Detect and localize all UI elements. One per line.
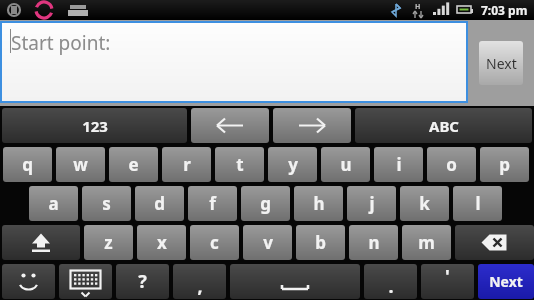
staticText: u [340,153,352,176]
button[interactable]: b [296,225,345,260]
staticText: ? [138,269,147,294]
staticText: p [499,153,510,176]
button[interactable]: , [173,264,226,299]
staticText: f [209,192,216,215]
staticText: q [22,153,33,176]
button[interactable]: q [3,147,52,182]
staticText: a [48,192,59,215]
staticText: e [128,153,139,176]
button[interactable]: r [162,147,211,182]
button[interactable]: 123 [2,108,187,143]
button[interactable]: o [427,147,476,182]
button[interactable]: t [215,147,264,182]
staticText: z [104,231,113,254]
staticText: c [210,231,219,254]
button[interactable]: Space [230,264,360,299]
button[interactable]: h [294,186,343,221]
button[interactable]: a [29,186,78,221]
staticText: i [396,153,402,176]
button[interactable]: Next [479,41,523,85]
staticText: d [154,192,165,215]
button[interactable]: e [109,147,158,182]
staticText: Next [486,54,517,73]
button[interactable]: d [135,186,184,221]
button[interactable]: j [347,186,396,221]
staticText: H [415,2,421,12]
button[interactable]: ' [421,264,474,299]
staticText: s [102,192,111,215]
button[interactable]: l [453,186,502,221]
button[interactable]: k [400,186,449,221]
staticText: t [236,153,244,176]
staticText: m [418,231,435,254]
button[interactable]: Emoticons [2,264,55,299]
button[interactable]: . [364,264,417,299]
staticText: l [475,192,481,215]
staticText: y [288,153,298,176]
staticText: . [388,274,394,299]
button[interactable]: Next [478,264,534,299]
staticText: 7:03 pm [481,2,528,18]
button[interactable]: Move cursor left [191,108,269,143]
button[interactable]: ? [116,264,169,299]
button[interactable]: Switch keyboard [59,264,112,299]
staticText: o [446,153,457,176]
button[interactable]: m [402,225,451,260]
staticText: Start point: [11,30,111,56]
button[interactable]: Delete [455,225,534,260]
button[interactable]: z [84,225,133,260]
button[interactable]: Shift [2,225,80,260]
button[interactable]: ABC [355,108,532,143]
button[interactable]: f [188,186,237,221]
button[interactable]: u [321,147,370,182]
button[interactable]: g [241,186,290,221]
staticText: v [263,231,273,254]
staticText: g [260,192,271,215]
button[interactable]: i [374,147,423,182]
staticText: ABC [429,116,459,136]
staticText: , [197,274,203,299]
button[interactable]: v [243,225,292,260]
button[interactable]: Move cursor right [273,108,351,143]
staticText: 123 [82,116,108,136]
staticText: r [183,153,191,176]
staticText: ' [445,264,450,289]
staticText: b [315,231,326,254]
button[interactable]: p [480,147,529,182]
button[interactable]: w [56,147,105,182]
staticText: w [73,153,88,176]
button[interactable]: s [82,186,131,221]
button[interactable]: n [349,225,398,260]
button[interactable]: y [268,147,317,182]
staticText: h [313,192,325,215]
staticText: k [419,192,430,215]
staticText: x [157,231,167,254]
button[interactable]: Start point: [2,23,466,101]
button[interactable]: x [137,225,186,260]
staticText: j [369,192,375,215]
button[interactable]: c [190,225,239,260]
staticText: n [368,231,380,254]
staticText: Next [489,272,523,291]
